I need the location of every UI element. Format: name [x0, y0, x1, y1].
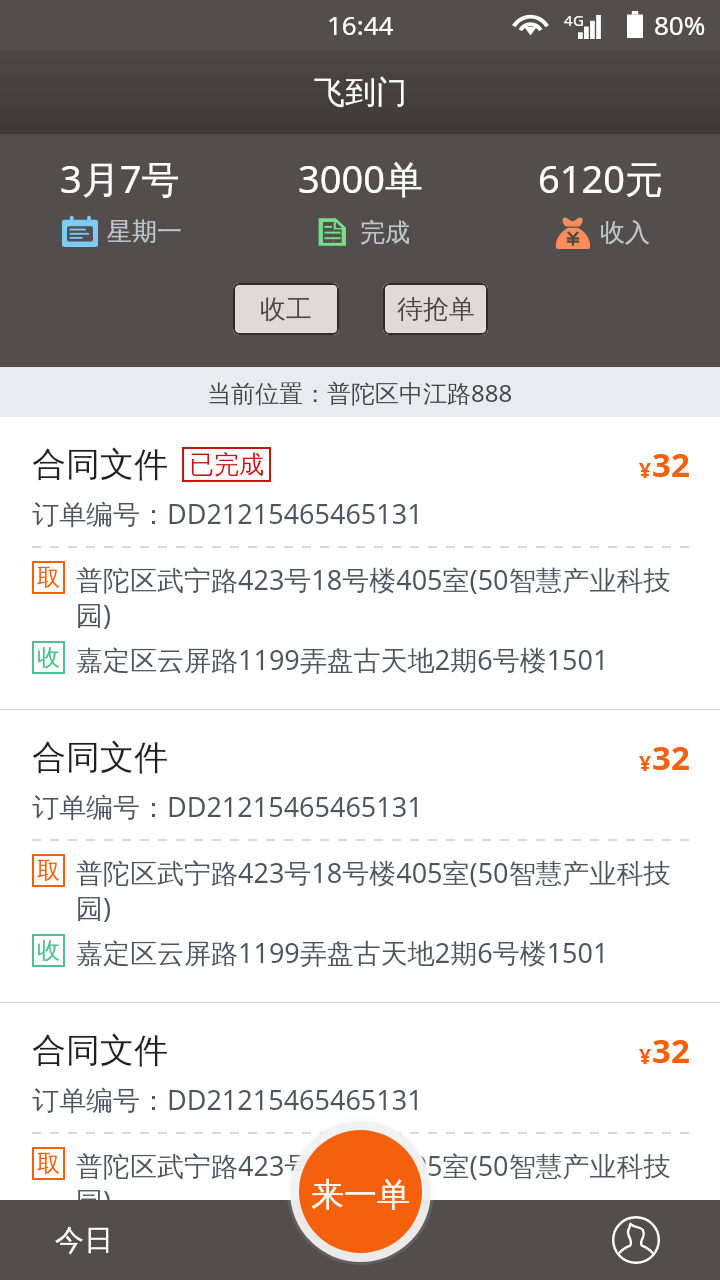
staticText: 取 — [37, 1149, 60, 1178]
staticText: 收 — [37, 1229, 60, 1258]
button[interactable]: 收工 — [233, 283, 339, 335]
staticText: G — [573, 10, 584, 30]
staticText: 今日 — [55, 1222, 113, 1259]
staticText: 3月7号 — [60, 152, 180, 204]
button[interactable]: 合同文件 — [0, 1003, 720, 1280]
staticText: 完成 — [360, 217, 410, 248]
staticText: 3000单 — [298, 152, 423, 204]
staticText: 当前位置：普陀区中江路888 — [207, 376, 513, 409]
button[interactable]: Profile — [540, 1200, 720, 1280]
staticText: 32 — [652, 735, 690, 780]
staticText: 32 — [652, 1028, 690, 1073]
staticText: 合同文件 — [32, 1029, 168, 1072]
staticText: 订单编号：DD21215465465131 — [32, 1081, 423, 1118]
staticText: ¥ — [639, 749, 652, 778]
staticText: 订单编号：DD21215465465131 — [32, 495, 423, 532]
staticText: 6120元 — [538, 152, 663, 204]
staticText: 32 — [652, 442, 690, 487]
staticText: 80% — [654, 7, 706, 42]
staticText: 收入 — [600, 217, 650, 248]
button[interactable]: 来一单 — [299, 1130, 422, 1253]
staticText: 合同文件 — [32, 443, 168, 486]
staticText: ¥ — [639, 1042, 652, 1071]
staticText: 收 — [37, 936, 60, 965]
staticText: 嘉定区云屏路1199弄盘古天地2期6号楼1501 — [76, 1227, 609, 1264]
staticText: ¥ — [639, 456, 652, 485]
staticText: 星期一 — [107, 216, 182, 247]
staticText: 合同文件 — [32, 736, 168, 779]
staticText: 嘉定区云屏路1199弄盘古天地2期6号楼1501 — [76, 641, 609, 678]
button[interactable]: 当前位置：普陀区中江路888 — [0, 367, 720, 417]
staticText: 飞到门 — [314, 73, 407, 112]
button[interactable]: 今日 — [0, 1200, 240, 1280]
staticText: 订单编号：DD21215465465131 — [32, 788, 423, 825]
staticText: 普陀区武宁路423号18号楼405室(50智慧产业科技园) — [76, 561, 698, 633]
staticText: 16:44 — [327, 7, 394, 42]
staticText: 普陀区武宁路423号18号楼405室(50智慧产业科技园) — [76, 1147, 698, 1219]
staticText: 收工 — [260, 293, 312, 326]
button[interactable]: 合同文件 — [0, 417, 720, 709]
staticText: 普陀区武宁路423号18号楼405室(50智慧产业科技园) — [76, 854, 698, 926]
staticText: 嘉定区云屏路1199弄盘古天地2期6号楼1501 — [76, 934, 609, 971]
button[interactable]: 合同文件 — [0, 710, 720, 1002]
staticText: 收 — [37, 643, 60, 672]
staticText: 取 — [37, 856, 60, 885]
staticText: 来一单 — [311, 1174, 410, 1216]
button[interactable]: 待抢单 — [383, 283, 488, 335]
staticText: 待抢单 — [397, 293, 475, 326]
staticText: 4 — [564, 10, 573, 30]
staticText: 已完成 — [189, 449, 264, 480]
staticText: 取 — [37, 563, 60, 592]
